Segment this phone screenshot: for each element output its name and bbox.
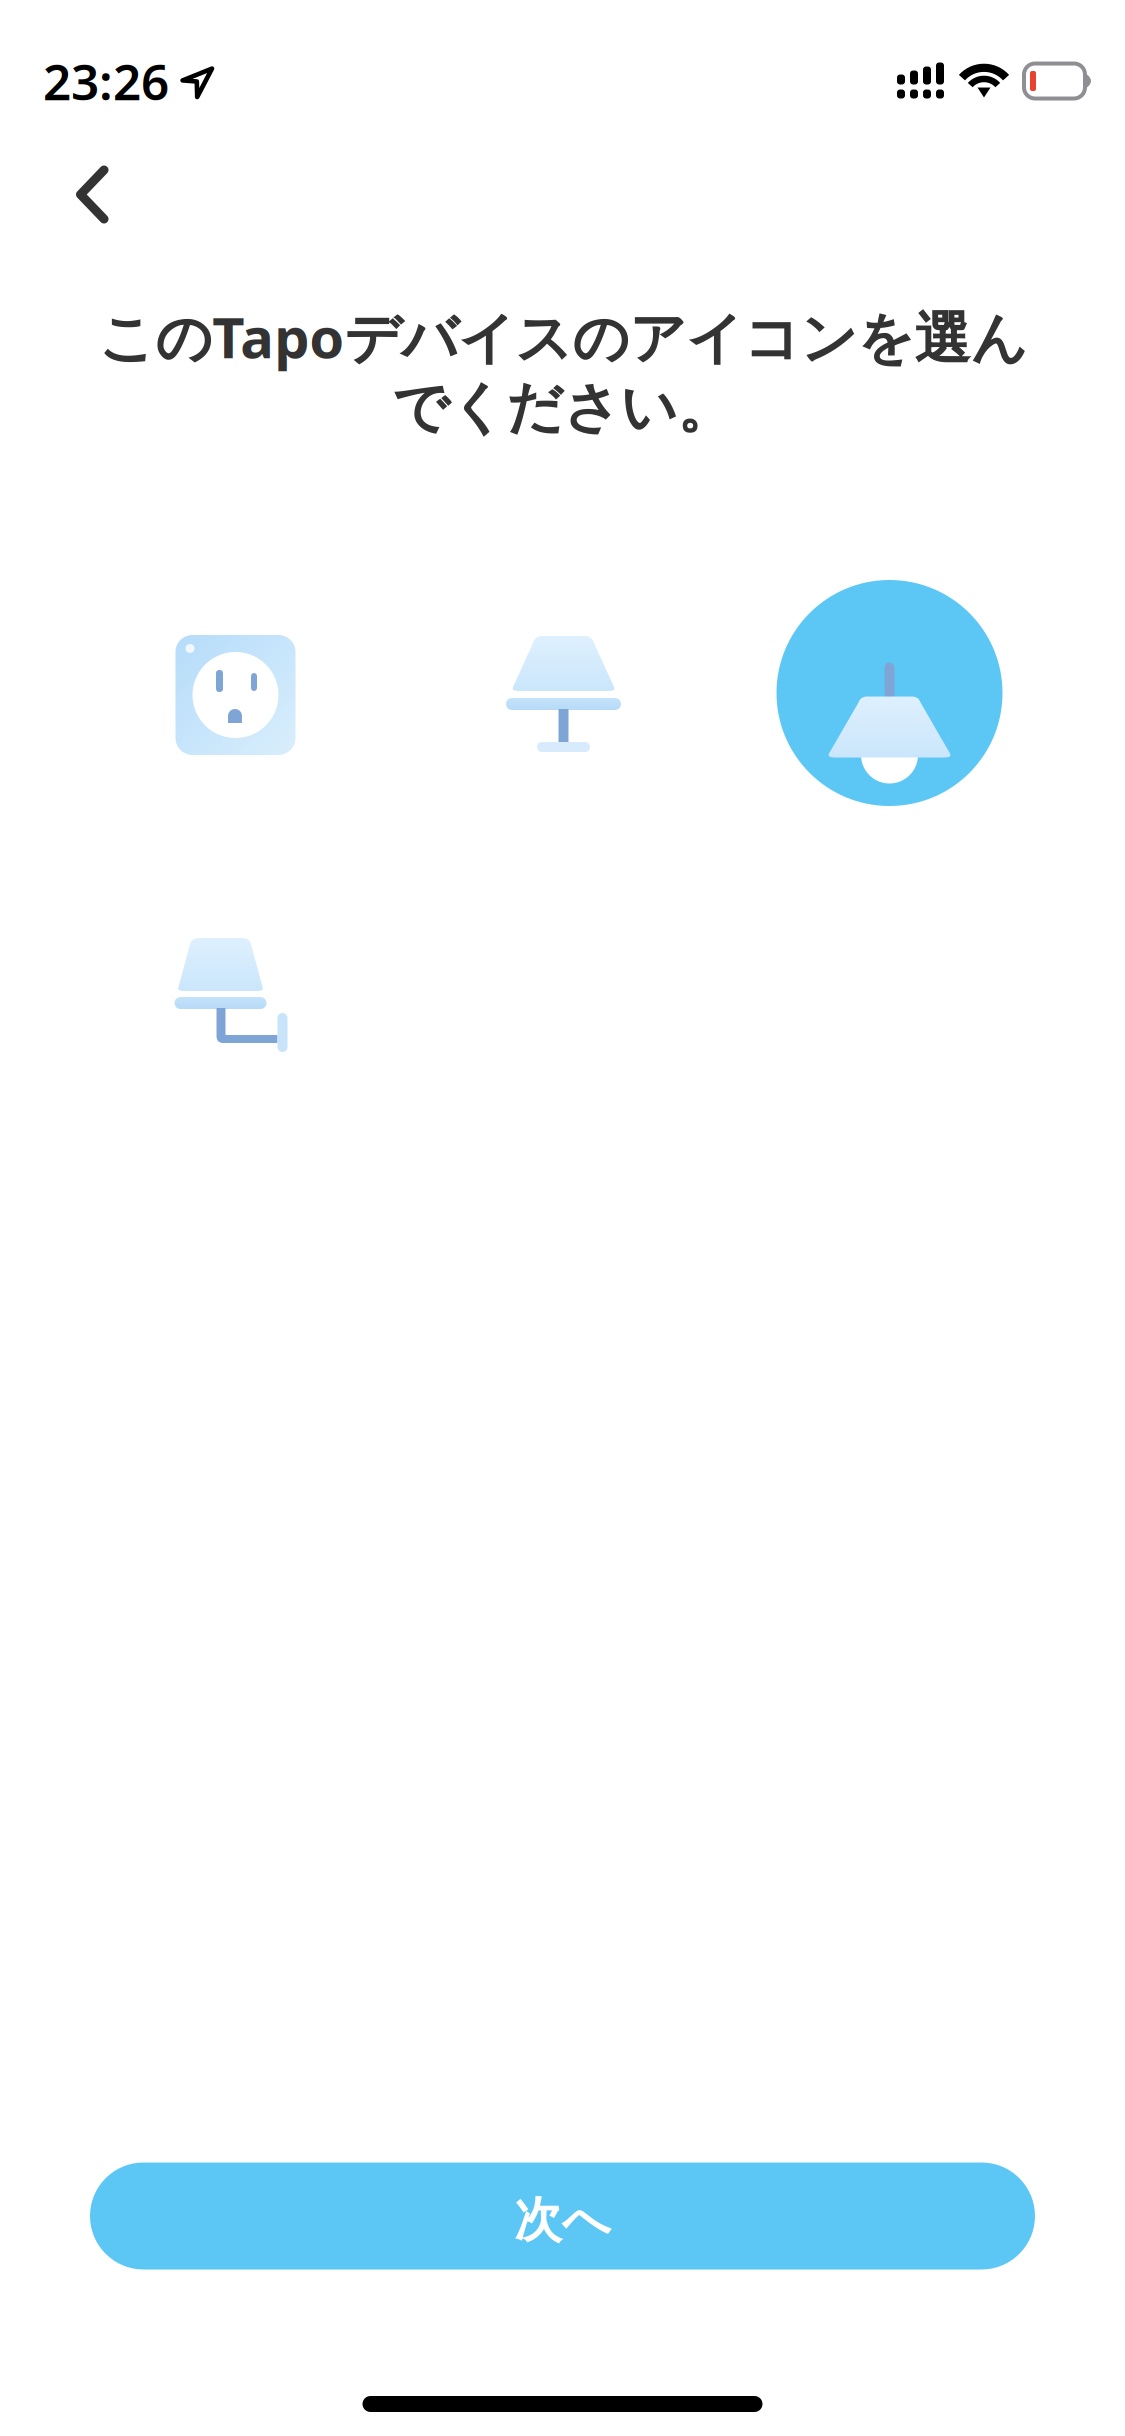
button[interactable]: Back: [32, 129, 168, 260]
staticText: このTapoデバイスのアイコンを選んでください。: [98, 299, 1027, 442]
button[interactable]: Table lamp: [449, 580, 675, 806]
button[interactable]: Smart plug: [122, 580, 348, 806]
staticText: 23:26: [43, 48, 169, 114]
staticText: 次へ: [514, 2190, 611, 2249]
button[interactable]: Pendant lamp: [776, 580, 1002, 806]
button[interactable]: 次へ: [90, 2162, 1035, 2269]
button[interactable]: Wall lamp: [122, 882, 348, 1108]
